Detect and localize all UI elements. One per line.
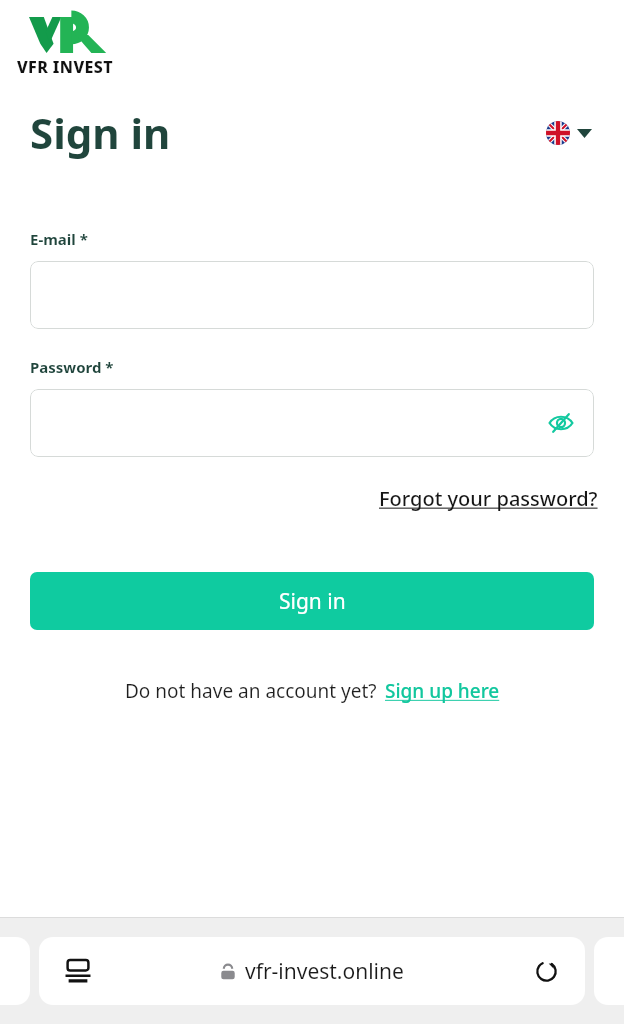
staticText: Sign up here [385, 678, 500, 704]
staticText: Password * [30, 357, 114, 377]
staticText: Sign in [279, 587, 346, 616]
button[interactable]: Reload page [529, 954, 563, 988]
button[interactable]: VFR Invest logo [17, 17, 113, 78]
button[interactable]: Change language [542, 117, 596, 149]
button[interactable]: Forgot your password? [377, 481, 600, 516]
button[interactable]: Reader view [61, 954, 95, 988]
button[interactable]: Password input field [30, 389, 594, 457]
button[interactable]: Show password [544, 406, 578, 440]
staticText: vfr-invest.online [245, 957, 404, 986]
staticText: Forgot your password? [379, 485, 598, 512]
staticText: Sign in [30, 104, 171, 161]
button[interactable]: Next tab [594, 937, 624, 1005]
staticText: Do not have an account yet? [125, 678, 377, 704]
staticText: E-mail * [30, 229, 88, 249]
staticText: VFR INVEST [17, 56, 113, 78]
button[interactable]: Reader view [39, 937, 585, 1005]
button[interactable]: E-mail input field [30, 261, 594, 329]
button[interactable]: Sign in [30, 572, 594, 630]
button[interactable]: Previous tab [0, 937, 30, 1005]
button[interactable]: Sign up here [385, 678, 500, 704]
